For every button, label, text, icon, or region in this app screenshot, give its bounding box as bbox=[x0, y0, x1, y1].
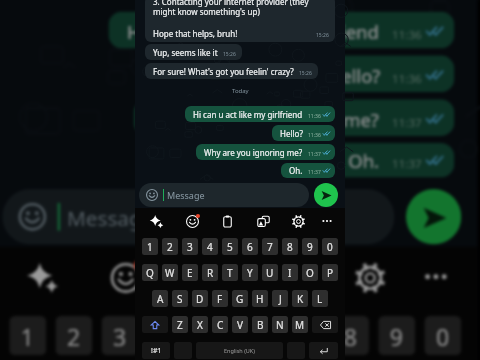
button[interactable]: E bbox=[182, 264, 198, 281]
button[interactable]: J bbox=[272, 290, 288, 307]
button[interactable]: Z bbox=[172, 316, 188, 333]
staticText: Oh. bbox=[348, 148, 381, 173]
button[interactable]: K bbox=[292, 290, 308, 307]
button[interactable]: 4 bbox=[202, 238, 218, 255]
staticText: Y bbox=[247, 266, 253, 280]
button[interactable]: Why are you ignoring me? bbox=[134, 99, 454, 136]
staticText: 2 bbox=[167, 240, 173, 254]
button[interactable]: Enter bbox=[309, 342, 338, 359]
button[interactable]: Hello? bbox=[309, 55, 454, 92]
button[interactable]: !#1 bbox=[142, 342, 170, 359]
button[interactable]: Clipboard bbox=[180, 247, 231, 307]
button[interactable]: G bbox=[232, 290, 248, 307]
button[interactable]: 3. Contacting your internet provider (th… bbox=[145, 0, 335, 42]
staticText: 11:37 bbox=[392, 157, 422, 173]
staticText: 11:36 bbox=[308, 132, 321, 139]
staticText: 4 bbox=[159, 321, 173, 353]
staticText: Why are you ignoring me? bbox=[152, 106, 381, 131]
button[interactable]: A bbox=[152, 290, 168, 307]
button[interactable]: 9 bbox=[302, 238, 318, 255]
button[interactable]: Send bbox=[406, 189, 461, 244]
button[interactable]: Clipboard bbox=[216, 208, 238, 234]
button[interactable]: P bbox=[322, 264, 338, 281]
button[interactable]: More options bbox=[411, 247, 461, 307]
button[interactable]: 9 bbox=[378, 316, 415, 355]
button[interactable]: R bbox=[202, 264, 218, 281]
button[interactable]: 4 bbox=[148, 316, 185, 355]
button[interactable]: S bbox=[172, 290, 188, 307]
staticText: Hello? bbox=[280, 128, 303, 139]
button[interactable]: Oh. bbox=[330, 143, 454, 178]
button[interactable]: 7 bbox=[262, 238, 278, 255]
button[interactable]: H bbox=[252, 290, 268, 307]
staticText: 15:26 bbox=[299, 70, 312, 77]
button[interactable]: Shift bbox=[142, 316, 168, 333]
staticText: O bbox=[306, 266, 314, 280]
staticText: 5 bbox=[205, 321, 219, 353]
button[interactable]: Message bbox=[139, 183, 309, 207]
button[interactable]: Hello? bbox=[272, 125, 335, 141]
button[interactable]: GIF bbox=[263, 247, 314, 307]
button[interactable]: L bbox=[312, 290, 328, 307]
button[interactable]: Yup, seems like it bbox=[145, 44, 242, 60]
button[interactable]: Backspace bbox=[312, 316, 338, 333]
button[interactable]: GIF bbox=[252, 208, 274, 234]
button[interactable]: Oh. bbox=[281, 163, 335, 178]
button[interactable]: 1 bbox=[9, 316, 46, 355]
button[interactable]: I bbox=[282, 264, 298, 281]
staticText: Yup, seems like it bbox=[153, 47, 218, 58]
button[interactable]: 8 bbox=[282, 238, 298, 255]
button[interactable]: 2 bbox=[162, 238, 178, 255]
button[interactable]: X bbox=[192, 316, 208, 333]
button[interactable]: Y bbox=[242, 264, 258, 281]
button[interactable]: 3 bbox=[182, 238, 198, 255]
button[interactable]: Send bbox=[314, 183, 338, 207]
button[interactable]: N bbox=[272, 316, 288, 333]
button[interactable]: 0 bbox=[424, 316, 461, 355]
button[interactable]: Emoji bbox=[99, 247, 150, 307]
button[interactable]: Settings bbox=[287, 208, 309, 234]
button[interactable]: D bbox=[192, 290, 208, 307]
button[interactable]: W bbox=[162, 264, 178, 281]
button[interactable]: 5 bbox=[194, 316, 231, 355]
button[interactable]: 1 bbox=[142, 238, 158, 255]
button[interactable]: 6 bbox=[242, 238, 258, 255]
button[interactable]: 7 bbox=[286, 316, 323, 355]
button[interactable]: For sure! What's got you feelin' crazy? bbox=[145, 63, 318, 79]
button[interactable]: 5 bbox=[222, 238, 238, 255]
button[interactable]: 0 bbox=[322, 238, 338, 255]
button[interactable]: T bbox=[222, 264, 238, 281]
button[interactable]: Why are you ignoring me? bbox=[196, 144, 335, 160]
button[interactable]: Emoji bbox=[181, 208, 203, 234]
button[interactable]: B bbox=[252, 316, 268, 333]
staticText: Oh. bbox=[289, 165, 303, 176]
button[interactable]: Hi can u act like my girlfriend bbox=[108, 12, 454, 48]
staticText: D bbox=[196, 292, 204, 306]
button[interactable]: Settings bbox=[344, 247, 394, 307]
button[interactable]: V bbox=[232, 316, 248, 333]
button[interactable]: Q bbox=[142, 264, 158, 281]
staticText: N bbox=[276, 318, 284, 332]
button[interactable]: U bbox=[262, 264, 278, 281]
staticText: 5 bbox=[227, 240, 233, 254]
staticText: 6 bbox=[251, 321, 265, 353]
button[interactable]: O bbox=[302, 264, 318, 281]
button[interactable]: 6 bbox=[240, 316, 277, 355]
button[interactable]: Stickers bbox=[145, 208, 167, 234]
button[interactable]: 8 bbox=[332, 316, 369, 355]
button[interactable]: C bbox=[212, 316, 228, 333]
button[interactable]: F bbox=[212, 290, 228, 307]
button[interactable]: M bbox=[292, 316, 308, 333]
button[interactable]: Message bbox=[2, 189, 394, 244]
button[interactable]: More options bbox=[316, 208, 338, 234]
staticText: M bbox=[295, 318, 305, 332]
button[interactable]: Hi can u act like my girlfriend bbox=[185, 106, 335, 122]
button[interactable]: English (UK) bbox=[196, 342, 283, 359]
button[interactable]: Stickers bbox=[16, 247, 67, 307]
button[interactable]: 3 bbox=[102, 316, 138, 355]
staticText: Hi can u act like my girlfriend bbox=[193, 109, 303, 120]
staticText: J bbox=[279, 292, 282, 306]
button[interactable]: 2 bbox=[55, 316, 92, 355]
